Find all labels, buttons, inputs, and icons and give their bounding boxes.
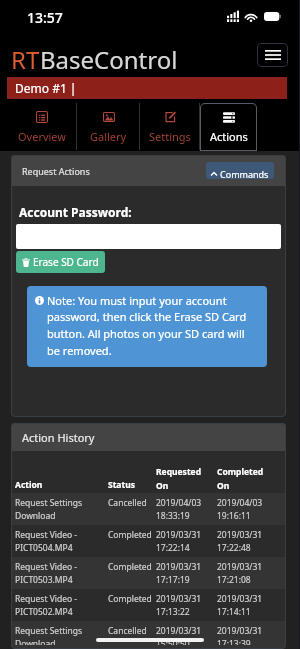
staticText: Settings [149,129,191,144]
button[interactable]: Erase SD Card [16,251,105,273]
staticText: 2019/03/31 17:22:14 [156,529,217,553]
button[interactable]: Request Video - PICT0503.MP4 [11,557,286,589]
button[interactable]: Settings [140,103,199,151]
staticText: 2019/03/31 17:13:22 [156,593,217,617]
button[interactable]: Request Settings Download [11,621,286,649]
staticText: Completed [108,593,156,605]
staticText: BaseControl [40,43,178,76]
staticText: Action History [22,430,95,445]
button[interactable]: Overview [8,103,76,151]
staticText: 2019/03/31 17:17:19 [156,561,217,585]
staticText: 2019/03/31 15:50:50 [156,625,217,645]
staticText: Actions [210,129,248,144]
staticText: Erase SD Card [33,255,99,269]
button[interactable]: Request Settings Download [11,493,286,525]
staticText: Completed [108,529,156,541]
button[interactable]: Request Video - PICT0502.MP4 [11,589,286,621]
staticText: 2019/03/31 17:22:48 [217,529,286,553]
staticText: Request Settings Download [15,625,108,645]
button[interactable]: Actions [200,103,257,151]
button[interactable] [16,224,281,249]
staticText: Note: You must input your account passwo… [47,293,259,359]
staticText: 13:57 [27,8,63,27]
staticText: Cancelled [108,625,156,637]
staticText: Request Video - PICT0503.MP4 [15,561,108,585]
staticText: RT [11,43,40,76]
staticText: Request Actions [22,165,90,177]
staticText: Status [108,479,156,491]
staticText: Requested On [156,466,217,491]
button[interactable]: Gallery [77,103,139,151]
staticText: Demo #1 | [15,80,77,96]
staticText: Account Password: [19,204,132,220]
staticText: 2019/03/31 17:13:39 [217,625,286,645]
button[interactable]: Menu [257,43,288,67]
staticText: Action [15,479,108,491]
staticText: Completed [108,561,156,573]
staticText: Gallery [90,129,127,144]
staticText: Completed On [217,466,286,491]
staticText: Overview [18,129,66,144]
staticText: Request Video - PICT0504.MP4 [15,529,108,553]
staticText: Commands [220,168,269,179]
staticText: Cancelled [108,497,156,509]
staticText: 2019/03/31 17:14:11 [217,593,286,617]
staticText: 2019/03/31 17:21:08 [217,561,286,585]
staticText: 2019/04/03 19:16:11 [217,497,286,521]
staticText: 2019/04/03 18:33:19 [156,497,217,521]
button[interactable]: Commands [206,162,274,179]
staticText: Request Video - PICT0502.MP4 [15,593,108,617]
button[interactable]: Request Video - PICT0504.MP4 [11,525,286,557]
staticText: Request Settings Download [15,497,108,521]
